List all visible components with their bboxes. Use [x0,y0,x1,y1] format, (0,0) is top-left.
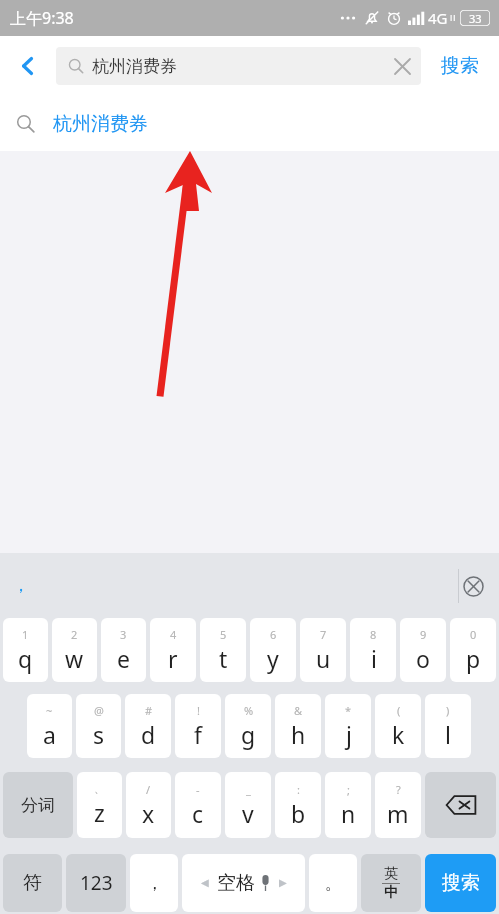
button[interactable]: Backspace [425,772,496,838]
staticText: 33 [469,11,482,26]
staticText: # [145,703,153,718]
staticText: * [345,703,352,718]
staticText: 0 [470,627,477,642]
button[interactable]: 3 [101,618,146,682]
button[interactable]: 符 [3,854,62,912]
button[interactable]: & [275,694,321,758]
button[interactable]: @ [76,694,121,758]
button[interactable]: ? [375,772,421,838]
button[interactable]: 搜索 [421,36,499,96]
staticText: e [117,643,130,674]
button[interactable]: * [325,694,371,758]
staticText: i [371,643,377,674]
staticText: r [168,643,178,674]
staticText: 123 [80,870,113,896]
staticText: 1 [22,627,29,642]
button[interactable]: 英 [361,854,421,912]
staticText: y [267,643,279,674]
button[interactable]: 4 [150,618,196,682]
button[interactable]: 分词 [3,772,73,838]
button[interactable]: 6 [250,618,296,682]
staticText: ( [397,703,401,718]
staticText: l [445,719,451,750]
button[interactable]: 搜索 [425,854,496,912]
staticText: ; [347,782,350,797]
staticText: p [466,643,481,674]
staticText: 9 [420,627,427,642]
button[interactable]: _ [225,772,271,838]
button[interactable]: 5 [200,618,246,682]
staticText: u [316,643,331,674]
staticText: ~ [46,703,53,718]
button[interactable]: 杭州消费券 [0,96,499,151]
staticText: j [346,719,352,750]
button[interactable]: - [175,772,221,838]
staticText: 7 [320,627,327,642]
staticText: ! [197,703,200,718]
button[interactable]: 杭州消费券 [56,47,421,85]
staticText: v [242,798,254,829]
button[interactable]: 2 [52,618,97,682]
staticText: 8 [370,627,377,642]
button[interactable]: 8 [350,618,396,682]
button[interactable]: # [125,694,171,758]
staticText: & [294,703,303,718]
staticText: @ [94,703,104,718]
staticText: a [43,719,56,750]
button[interactable]: 1 [3,618,48,682]
staticText: 3 [120,627,127,642]
staticText: n [341,798,356,829]
button[interactable]: 、 [77,772,122,838]
staticText: % [244,703,254,718]
staticText: d [141,719,156,750]
staticText: 空格 [217,871,255,895]
staticText: 中 [384,884,398,902]
staticText: 4G [428,8,448,28]
staticText: o [416,643,430,674]
staticText: ， [146,873,163,894]
button[interactable]: : [275,772,321,838]
staticText: 4 [170,627,177,642]
button[interactable]: ◀ [182,854,305,912]
staticText: - [196,782,200,797]
staticText: x [142,798,155,829]
staticText: q [18,643,33,674]
staticText: ) [446,703,450,718]
staticText: 5 [220,627,227,642]
button[interactable]: ( [375,694,421,758]
staticText: 英 [384,865,398,883]
button[interactable]: ， [130,854,178,912]
button[interactable]: 7 [300,618,346,682]
staticText: 搜索 [442,871,480,895]
button[interactable]: 123 [66,854,126,912]
button[interactable]: ， [12,574,30,597]
staticText: t [219,643,228,674]
staticText: 搜索 [441,54,479,78]
staticText: m [387,798,409,829]
staticText: 。 [325,873,342,894]
button[interactable]: ! [175,694,221,758]
staticText: g [241,719,256,750]
staticText: 6 [270,627,277,642]
button[interactable]: % [225,694,271,758]
staticText: 、 [94,782,105,796]
staticText: 杭州消费券 [53,112,148,136]
button[interactable]: 0 [450,618,496,682]
staticText: c [192,798,204,829]
button[interactable]: ~ [27,694,72,758]
staticText: : [297,782,300,797]
button[interactable]: ) [425,694,471,758]
button[interactable]: / [126,772,171,838]
staticText: 上午9:38 [10,7,74,29]
button[interactable]: Clear [383,47,421,85]
button[interactable]: Close keyboard [455,568,491,604]
staticText: h [291,719,306,750]
button[interactable]: Back [0,36,56,96]
staticText: 分词 [21,795,55,816]
button[interactable]: 9 [400,618,446,682]
staticText: z [94,797,105,828]
staticText: b [291,798,306,829]
button[interactable]: ; [325,772,371,838]
button[interactable]: 。 [309,854,357,912]
staticText: ▶ [279,877,287,889]
